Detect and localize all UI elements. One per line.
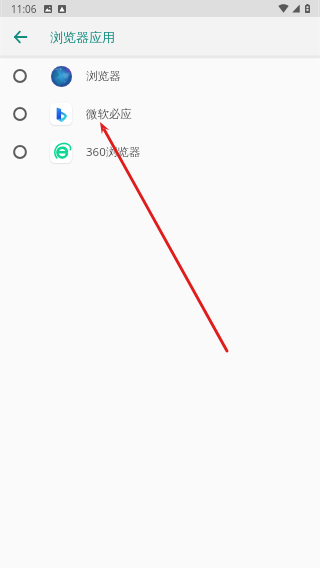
button[interactable]: 360浏览器 — [0, 133, 320, 171]
staticText: 360浏览器 — [86, 144, 141, 160]
staticText: 浏览器应用 — [50, 29, 115, 45]
staticText: 浏览器 — [86, 69, 121, 83]
staticText: 微软必应 — [86, 107, 132, 121]
button[interactable]: 浏览器 — [0, 57, 320, 95]
button[interactable]: Back — [0, 17, 40, 56]
staticText: 11:06 — [11, 2, 37, 16]
button[interactable]: 微软必应 — [0, 95, 320, 133]
